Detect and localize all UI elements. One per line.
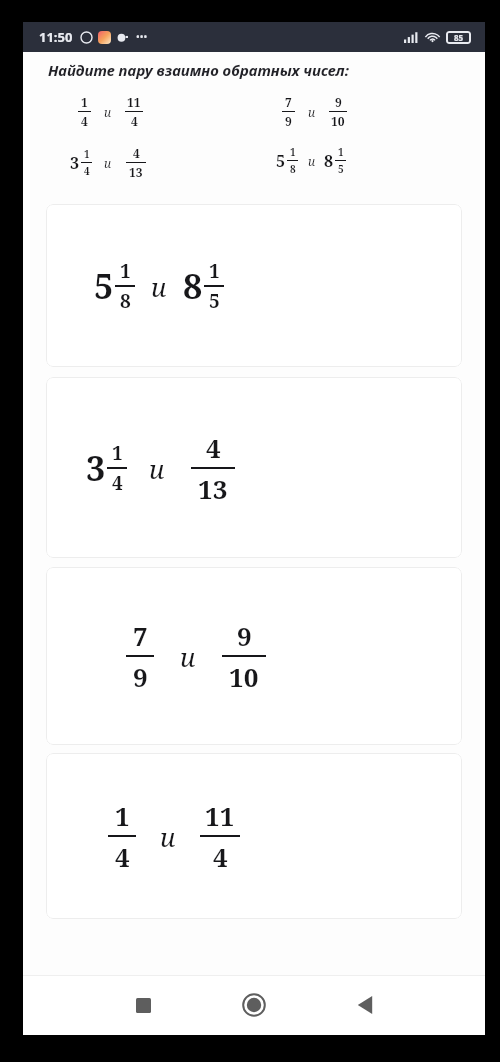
staticText: 3 [86, 445, 106, 491]
staticText: и [149, 451, 165, 486]
staticText: 9 [133, 659, 148, 694]
staticText: 1 [81, 94, 88, 110]
staticText: 1 [115, 798, 130, 833]
staticText: и [160, 819, 176, 854]
button[interactable]: Recent apps [122, 984, 164, 1026]
button[interactable]: 3 [46, 377, 462, 558]
staticText: и [104, 104, 112, 120]
staticText: 4 [81, 113, 88, 129]
staticText: 1 [120, 258, 131, 284]
staticText: 11 [205, 798, 235, 833]
staticText: 9 [335, 94, 342, 110]
staticText: 13 [129, 164, 143, 180]
staticText: и [104, 155, 112, 171]
staticText: 4 [131, 113, 138, 129]
staticText: 9 [237, 618, 252, 653]
staticText: 85 [454, 32, 464, 43]
staticText: 7 [285, 94, 292, 110]
staticText: 10 [229, 659, 259, 694]
button[interactable]: Back [344, 984, 386, 1026]
button[interactable]: 5 [46, 204, 462, 367]
staticText: 4 [206, 430, 221, 465]
staticText: и [180, 639, 196, 674]
staticText: 10 [331, 113, 345, 129]
staticText: и [308, 104, 316, 120]
staticText: 1 [112, 440, 123, 466]
staticText: 1 [84, 147, 90, 161]
staticText: 13 [198, 471, 228, 506]
staticText: 5 [209, 288, 220, 314]
staticText: 5 [94, 263, 114, 309]
staticText: 7 [133, 618, 148, 653]
staticText: 4 [112, 470, 123, 496]
staticText: 4 [84, 164, 90, 178]
staticText: Найдите пару взаимно обратных чисел: [48, 60, 349, 80]
staticText: 8 [183, 263, 203, 309]
staticText: 5 [276, 150, 286, 172]
staticText: 3 [70, 152, 80, 174]
staticText: 4 [213, 839, 228, 874]
staticText: 8 [120, 288, 131, 314]
button[interactable]: Home [233, 984, 275, 1026]
staticText: 8 [324, 150, 334, 172]
staticText: 9 [285, 113, 292, 129]
staticText: 8 [290, 162, 296, 176]
staticText: 11:50 [39, 28, 73, 46]
staticText: 5 [338, 162, 344, 176]
staticText: 4 [115, 839, 130, 874]
staticText: 11 [127, 94, 141, 110]
staticText: и [308, 153, 316, 169]
button[interactable]: 7 [46, 567, 462, 745]
staticText: 1 [209, 258, 220, 284]
staticText: 4 [133, 145, 140, 161]
staticText: ••• [136, 30, 148, 44]
staticText: и [151, 269, 167, 304]
staticText: 1 [290, 145, 296, 159]
button[interactable]: 1 [46, 753, 462, 919]
staticText: 1 [338, 145, 344, 159]
